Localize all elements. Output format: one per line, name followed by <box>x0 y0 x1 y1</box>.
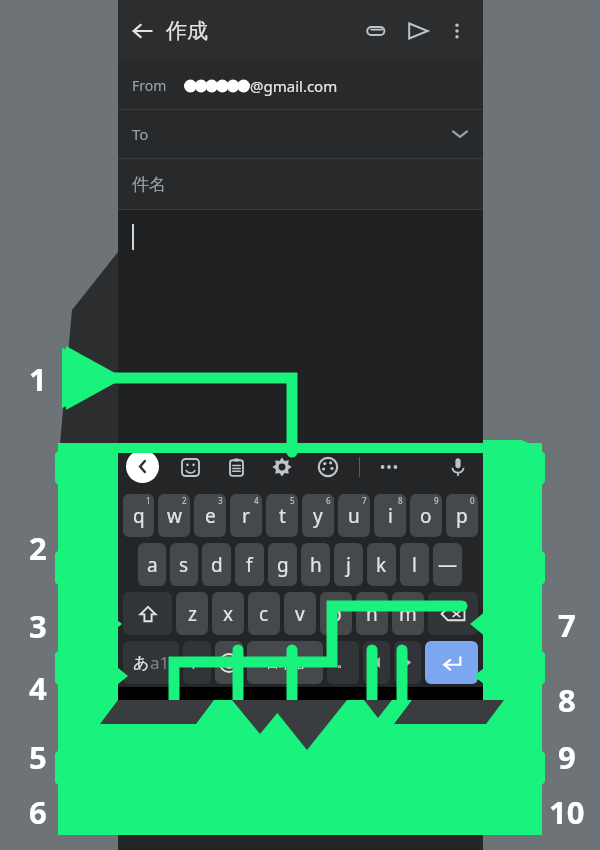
button[interactable]: To <box>118 110 483 158</box>
staticText: 5 <box>29 736 47 778</box>
staticText: j <box>346 552 351 578</box>
staticText: 6 <box>29 791 47 833</box>
button[interactable]: j <box>334 543 363 586</box>
staticText: a <box>147 552 158 578</box>
staticText: x <box>223 601 234 627</box>
button[interactable]: 、 <box>183 641 211 684</box>
staticText: 7 <box>558 604 576 646</box>
staticText: r <box>242 503 250 529</box>
button[interactable]: p <box>446 494 478 537</box>
button[interactable]: o <box>410 494 442 537</box>
button[interactable] <box>118 210 483 442</box>
button[interactable]: Switch input mode <box>123 641 179 684</box>
button[interactable]: Cursor right <box>394 641 421 684</box>
staticText: b <box>330 601 342 627</box>
staticText: 3 <box>29 605 47 647</box>
button[interactable]: Voice input <box>443 452 473 482</box>
button[interactable]: z <box>176 592 208 635</box>
staticText: 9 <box>434 495 439 506</box>
button[interactable]: f <box>235 543 264 586</box>
button[interactable]: 。 <box>327 641 359 684</box>
staticText: c <box>259 601 269 627</box>
button[interactable]: Hide keyboard <box>146 696 166 716</box>
button[interactable]: Emoji <box>215 641 243 684</box>
button[interactable]: h <box>301 543 330 586</box>
staticText: e <box>205 503 216 529</box>
staticText: z <box>188 601 197 627</box>
button[interactable]: k <box>367 543 396 586</box>
button[interactable]: 日本語 <box>247 641 323 684</box>
staticText: d <box>211 552 223 578</box>
button[interactable]: Backspace <box>428 592 478 635</box>
staticText: 10 <box>549 791 585 833</box>
button[interactable]: c <box>248 592 280 635</box>
button[interactable]: x <box>212 592 244 635</box>
staticText: g <box>277 552 289 578</box>
staticText: 、 <box>190 654 204 672</box>
button[interactable]: From <box>118 62 483 109</box>
button[interactable]: b <box>320 592 352 635</box>
staticText: w <box>167 503 182 529</box>
staticText: 8 <box>558 679 576 721</box>
staticText: 0 <box>470 495 475 506</box>
button[interactable]: 件名 <box>118 159 483 209</box>
staticText: 3 <box>218 495 223 506</box>
staticText: @gmail.com <box>250 76 338 96</box>
button[interactable]: m <box>392 592 424 635</box>
staticText: o <box>420 503 432 529</box>
button[interactable]: Cursor left <box>363 641 390 684</box>
button[interactable]: Shift <box>123 592 172 635</box>
button[interactable]: Clipboard <box>221 452 251 482</box>
staticText: 5 <box>290 495 295 506</box>
staticText: t <box>279 503 286 529</box>
button[interactable]: s <box>170 543 198 586</box>
button[interactable]: q <box>123 494 154 537</box>
button[interactable]: Enter <box>425 641 478 684</box>
staticText: i <box>388 503 393 529</box>
button[interactable]: n <box>356 592 388 635</box>
button[interactable]: Send <box>397 10 439 52</box>
staticText: To <box>132 124 149 144</box>
staticText: 件名 <box>132 174 166 195</box>
button[interactable]: v <box>284 592 316 635</box>
staticText: y <box>313 503 323 529</box>
button[interactable]: g <box>268 543 297 586</box>
button[interactable]: t <box>266 494 298 537</box>
staticText: 2 <box>29 527 47 569</box>
button[interactable]: Expand toolbar <box>126 450 159 483</box>
staticText: s <box>179 552 189 578</box>
staticText: 4 <box>29 667 47 709</box>
staticText: q <box>133 503 145 529</box>
button[interactable]: Attach file <box>355 10 397 52</box>
button[interactable]: r <box>230 494 262 537</box>
button[interactable]: l <box>400 543 429 586</box>
staticText: n <box>366 601 378 627</box>
button[interactable]: Theme <box>313 452 343 482</box>
staticText: From <box>132 76 167 95</box>
staticText: 1 <box>146 495 151 506</box>
button[interactable]: i <box>374 494 406 537</box>
button[interactable]: e <box>194 494 226 537</box>
staticText: h <box>310 552 322 578</box>
staticText: 作成 <box>166 18 208 44</box>
staticText: 6 <box>326 495 331 506</box>
staticText: 2 <box>182 495 187 506</box>
staticText: v <box>295 601 305 627</box>
button[interactable]: d <box>202 543 231 586</box>
button[interactable]: Back <box>118 7 166 55</box>
button[interactable]: More options <box>439 13 475 49</box>
button[interactable]: — <box>433 543 462 586</box>
button[interactable]: Stickers <box>175 452 205 482</box>
button[interactable]: w <box>158 494 190 537</box>
staticText: f <box>246 552 253 578</box>
staticText: 。 <box>337 655 349 670</box>
staticText: — <box>438 552 458 578</box>
staticText: 日本語 <box>266 655 305 671</box>
button[interactable]: y <box>302 494 334 537</box>
staticText: 8 <box>398 495 403 506</box>
button[interactable]: u <box>338 494 370 537</box>
button[interactable]: Settings <box>267 452 297 482</box>
button[interactable]: a <box>138 543 166 586</box>
button[interactable]: More <box>374 452 404 482</box>
staticText: u <box>348 503 360 529</box>
